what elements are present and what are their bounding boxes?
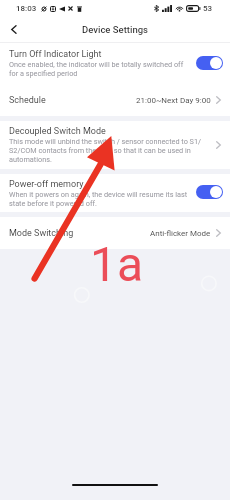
staticText: Schedule bbox=[9, 95, 46, 106]
staticText: 18:03 bbox=[16, 4, 37, 13]
button[interactable]: Power-off memory bbox=[0, 174, 230, 212]
staticText: Anti-flicker Mode bbox=[150, 229, 211, 238]
staticText: Device Settings bbox=[82, 24, 148, 35]
staticText: 1a bbox=[90, 236, 144, 292]
staticText: 53 bbox=[203, 4, 213, 13]
button[interactable]: Toggle bbox=[196, 56, 223, 70]
staticText: state before it powered off. bbox=[9, 199, 97, 208]
button[interactable]: Decoupled Switch Mode bbox=[0, 121, 230, 169]
staticText: 21:00~Next Day 9:00 bbox=[136, 96, 211, 105]
staticText: Power-off memory bbox=[9, 179, 84, 190]
staticText: automations. bbox=[9, 155, 52, 164]
button[interactable]: Toggle bbox=[196, 185, 223, 199]
staticText: Mode Switching bbox=[9, 228, 74, 239]
button[interactable]: Mode Switching bbox=[0, 217, 230, 249]
staticText: When it powers on again, the device will… bbox=[9, 190, 188, 199]
button[interactable]: Schedule bbox=[0, 84, 230, 116]
staticText: Decoupled Switch Mode bbox=[9, 126, 106, 137]
staticText: S2/COM contacts from the load so that it… bbox=[9, 146, 191, 155]
staticText: Turn Off Indicator Light bbox=[9, 49, 102, 60]
staticText: for a specified period bbox=[9, 69, 78, 78]
staticText: This mode will unbind the switch / senso… bbox=[9, 137, 202, 146]
button[interactable]: Turn Off Indicator Light bbox=[0, 43, 230, 84]
staticText: Once enabled, the indicator will be tota… bbox=[9, 60, 184, 69]
button[interactable]: Back bbox=[0, 16, 26, 43]
